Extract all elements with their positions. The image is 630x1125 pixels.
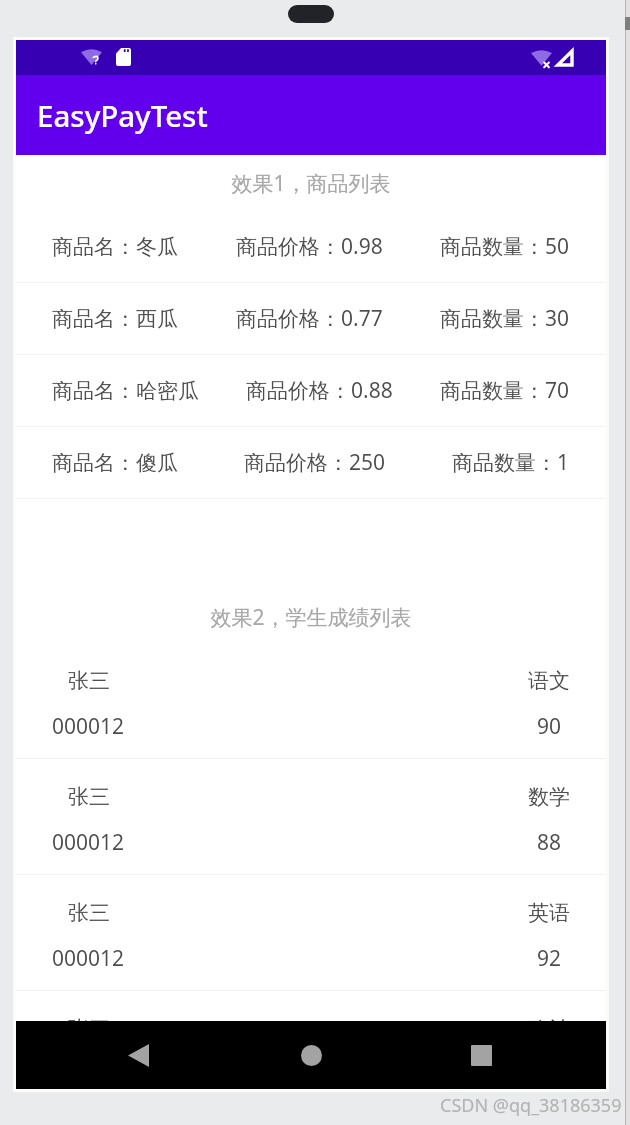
staticText: 效果1，商品列表 xyxy=(231,169,391,198)
staticText: 000012 xyxy=(52,828,125,857)
staticText: 88 xyxy=(537,828,562,857)
button[interactable]: Home xyxy=(279,1023,343,1087)
staticText: 商品名：傻瓜 xyxy=(52,450,178,476)
staticText: 商品名：哈密瓜 xyxy=(52,378,199,404)
button[interactable]: 张三 xyxy=(16,643,606,759)
staticText: 张三 xyxy=(68,668,110,694)
staticText: 商品价格：0.88 xyxy=(246,376,393,405)
staticText: 000012 xyxy=(52,944,125,973)
staticText: 商品名：冬瓜 xyxy=(52,234,178,260)
staticText: 张三 xyxy=(68,1016,110,1042)
staticText: CSDN @qq_38186359 xyxy=(440,1093,622,1118)
staticText: 张三 xyxy=(68,784,110,810)
staticText: EasyPayTest xyxy=(37,95,208,135)
staticText: 效果2，学生成绩列表 xyxy=(210,603,412,632)
staticText: 90 xyxy=(537,712,562,741)
button[interactable]: 商品名：哈密瓜 xyxy=(16,355,606,427)
staticText: 张三 xyxy=(68,900,110,926)
button[interactable]: 商品名：冬瓜 xyxy=(16,211,606,283)
button[interactable]: 商品名：傻瓜 xyxy=(16,427,606,499)
staticText: 商品价格：0.98 xyxy=(236,232,383,261)
staticText: 商品数量：70 xyxy=(440,376,570,405)
button[interactable]: Back xyxy=(106,1023,170,1087)
button[interactable]: 张三 xyxy=(16,759,606,875)
staticText: 商品数量：50 xyxy=(440,232,570,261)
staticText: 数学 xyxy=(528,784,570,810)
staticText: 商品价格：0.77 xyxy=(236,304,383,333)
button[interactable]: Recent apps xyxy=(449,1023,513,1087)
staticText: 000012 xyxy=(52,712,125,741)
staticText: 语文 xyxy=(528,668,570,694)
staticText: 政治 xyxy=(528,1016,570,1042)
staticText: 商品价格：250 xyxy=(244,448,386,477)
staticText: 商品数量：1 xyxy=(452,448,570,477)
button[interactable]: 商品名：西瓜 xyxy=(16,283,606,355)
staticText: 英语 xyxy=(528,900,570,926)
staticText: 商品数量：30 xyxy=(440,304,570,333)
staticText: 92 xyxy=(537,944,562,973)
button[interactable]: 张三 xyxy=(16,991,606,1089)
staticText: 商品名：西瓜 xyxy=(52,306,178,332)
button[interactable]: 张三 xyxy=(16,875,606,991)
